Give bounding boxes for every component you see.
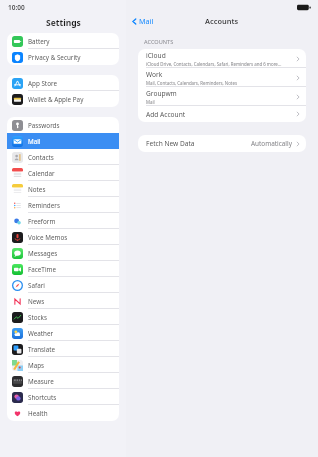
staticText: Freeform <box>28 217 56 226</box>
staticText: Measure <box>28 377 54 386</box>
staticText: Settings <box>46 17 81 29</box>
button[interactable]: Passwords <box>7 117 119 133</box>
button[interactable]: Measure <box>7 373 119 389</box>
button[interactable]: App Store <box>7 75 119 91</box>
button[interactable]: Wallet & Apple Pay <box>7 91 119 107</box>
button[interactable]: Notes <box>7 181 119 197</box>
button[interactable]: Translate <box>7 341 119 357</box>
button[interactable]: Mail <box>131 16 154 26</box>
staticText: Notes <box>28 185 46 194</box>
button[interactable]: Voice Memos <box>7 229 119 245</box>
button[interactable]: Privacy & Security <box>7 49 119 65</box>
staticText: iCloud <box>146 51 166 60</box>
staticText: Translate <box>28 345 56 354</box>
staticText: Messages <box>28 249 58 258</box>
staticText: Mail <box>146 99 155 105</box>
staticText: Reminders <box>28 201 60 210</box>
button[interactable]: Health <box>7 405 119 421</box>
staticText: FaceTime <box>28 265 56 274</box>
staticText: Health <box>28 409 48 418</box>
staticText: Automatically <box>251 139 292 148</box>
staticText: Battery <box>28 37 50 46</box>
button[interactable]: Stocks <box>7 309 119 325</box>
staticText: Maps <box>28 361 45 370</box>
staticText: Privacy & Security <box>28 53 81 62</box>
button[interactable]: iCloud <box>138 49 306 68</box>
staticText: Weather <box>28 329 54 338</box>
staticText: Mail <box>139 16 154 26</box>
button[interactable]: Battery <box>7 33 119 49</box>
button[interactable]: Work <box>138 68 306 87</box>
staticText: Groupwm <box>146 89 177 98</box>
staticText: 10:00 <box>8 3 25 12</box>
staticText: Safari <box>28 281 45 290</box>
staticText: ACCOUNTS <box>144 38 174 46</box>
button[interactable]: Add Account <box>138 106 306 122</box>
button[interactable]: Freeform <box>7 213 119 229</box>
button[interactable]: Weather <box>7 325 119 341</box>
staticText: Work <box>146 70 163 79</box>
button[interactable]: Mail <box>7 133 119 149</box>
staticText: iCloud Drive, Contacts, Calendars, Safar… <box>146 61 282 67</box>
button[interactable]: Contacts <box>7 149 119 165</box>
button[interactable]: Shortcuts <box>7 389 119 405</box>
button[interactable]: FaceTime <box>7 261 119 277</box>
button[interactable]: Calendar <box>7 165 119 181</box>
staticText: App Store <box>28 79 57 88</box>
button[interactable]: Safari <box>7 277 119 293</box>
button[interactable]: Maps <box>7 357 119 373</box>
staticText: Mail <box>28 137 41 146</box>
staticText: Calendar <box>28 169 55 178</box>
staticText: Add Account <box>146 110 186 119</box>
staticText: Contacts <box>28 153 54 162</box>
staticText: Mail, Contacts, Calendars, Reminders, No… <box>146 80 238 86</box>
staticText: Voice Memos <box>28 233 68 242</box>
button[interactable]: Fetch New Data <box>138 135 306 152</box>
staticText: Accounts <box>205 16 239 26</box>
button[interactable]: Messages <box>7 245 119 261</box>
staticText: Passwords <box>28 121 60 130</box>
button[interactable]: Reminders <box>7 197 119 213</box>
staticText: Stocks <box>28 313 47 322</box>
staticText: Shortcuts <box>28 393 57 402</box>
button[interactable]: News <box>7 293 119 309</box>
staticText: News <box>28 297 45 306</box>
button[interactable]: Groupwm <box>138 87 306 106</box>
staticText: Fetch New Data <box>146 139 195 148</box>
staticText: Wallet & Apple Pay <box>28 95 84 104</box>
